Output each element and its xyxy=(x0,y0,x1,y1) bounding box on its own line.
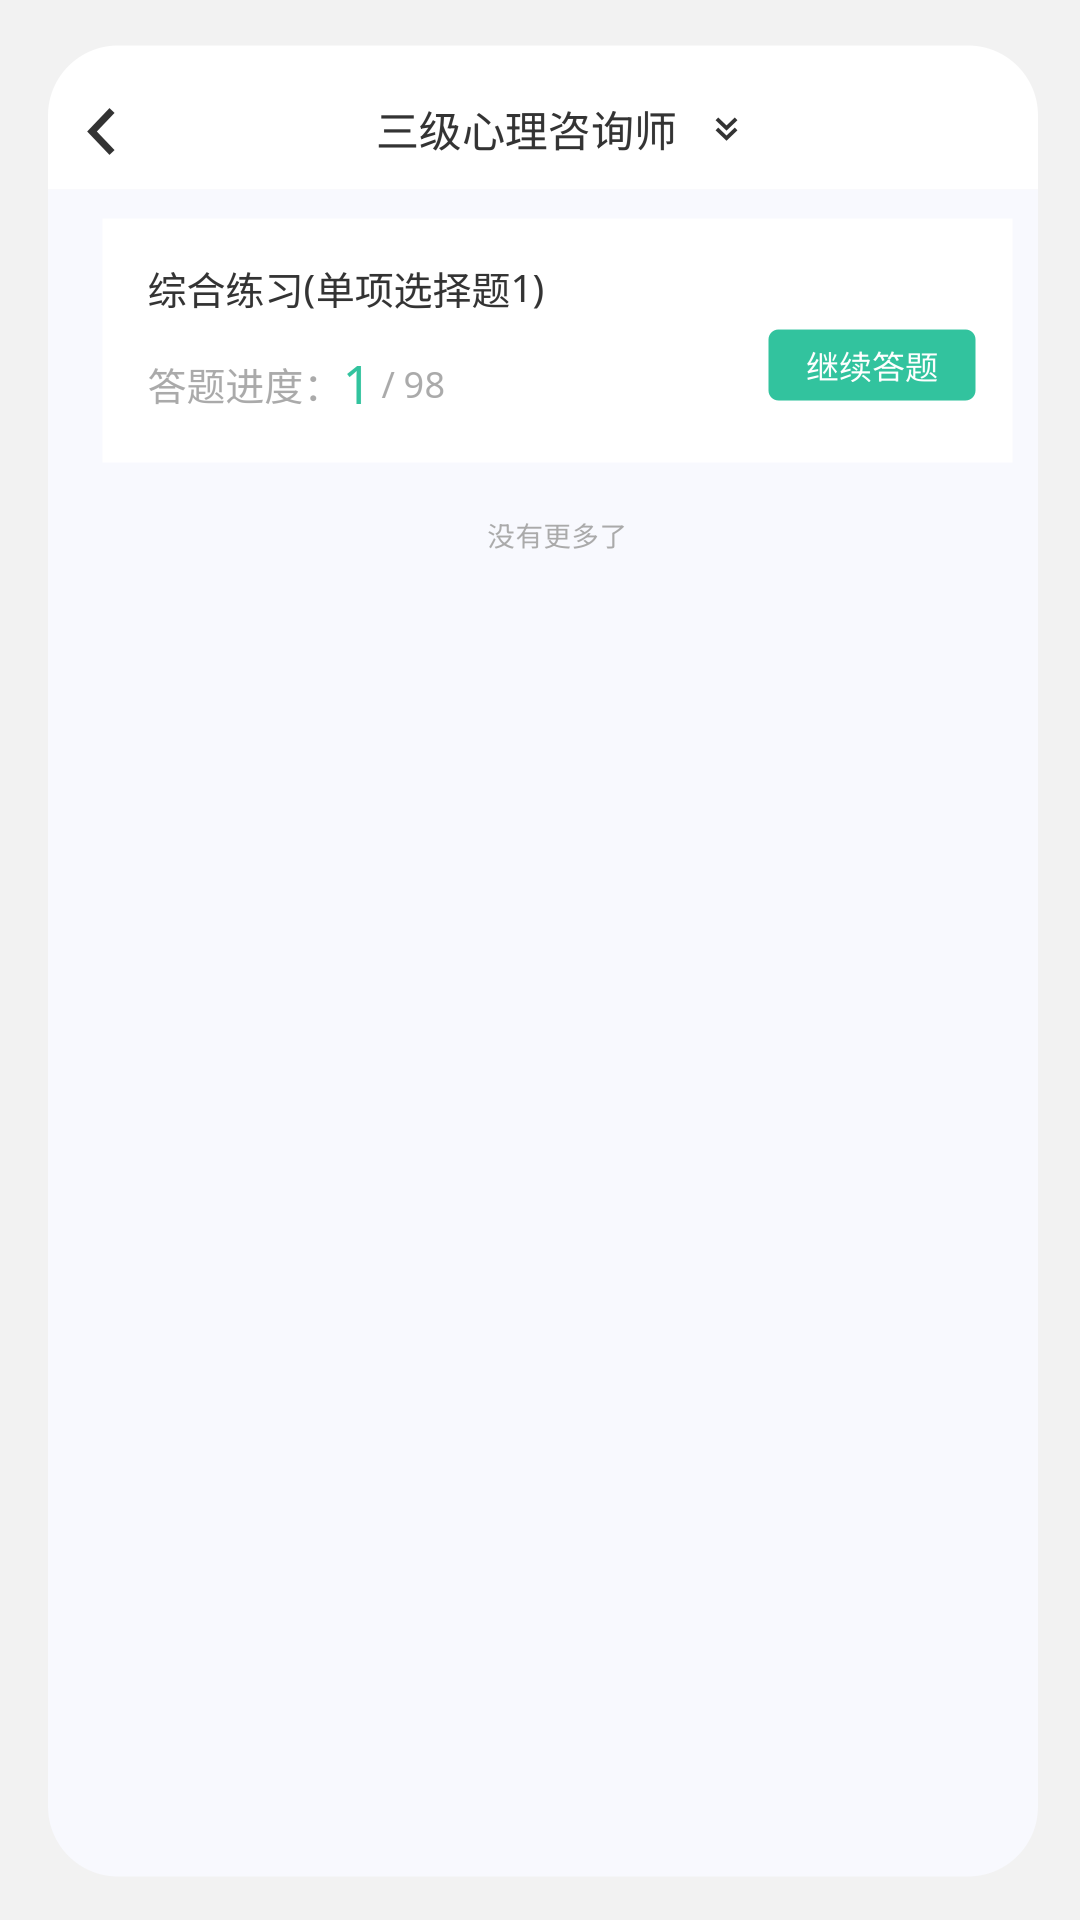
staticText: 三级心理咨询师 xyxy=(376,97,677,160)
staticText: 继续答题 xyxy=(806,341,938,389)
staticText: 综合练习(单项选择题1) xyxy=(147,260,544,316)
staticText: 1 xyxy=(342,348,372,419)
button[interactable]: 三级心理咨询师 xyxy=(360,77,754,180)
staticText: 答题进度： xyxy=(147,356,342,412)
button[interactable]: 继续答题 xyxy=(768,329,975,400)
staticText: / 98 xyxy=(372,359,445,408)
staticText: 没有更多了 xyxy=(487,514,627,554)
button[interactable]: Back xyxy=(52,81,152,181)
